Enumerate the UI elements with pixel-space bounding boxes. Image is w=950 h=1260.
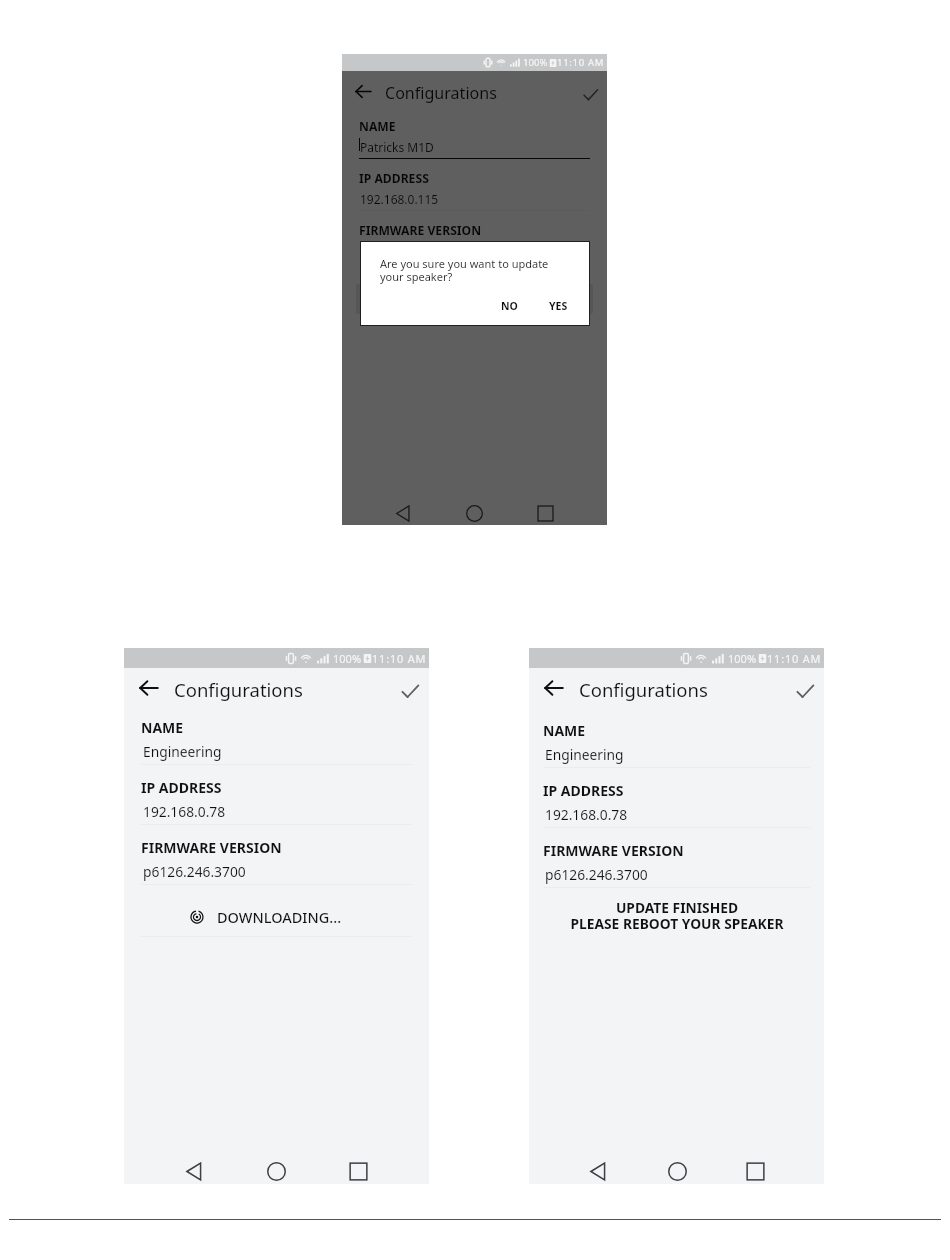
staticText: NAME	[543, 721, 586, 740]
staticText: FIRMWARE VERSION	[141, 838, 282, 857]
staticText: 11:10 AM	[767, 651, 822, 666]
staticText: Are you sure you want to update your spe…	[380, 256, 549, 284]
button[interactable]: Back	[368, 502, 439, 525]
staticText: IP ADDRESS	[359, 170, 429, 187]
staticText: Patricks M1D	[360, 139, 434, 155]
staticText: NO	[501, 299, 518, 313]
staticText: UPDATE FINISHED PLEASE REBOOT YOUR SPEAK…	[570, 898, 784, 933]
staticText: IP ADDRESS	[141, 778, 222, 797]
staticText: IP ADDRESS	[543, 781, 624, 800]
button[interactable]: Confirm	[793, 679, 817, 703]
button[interactable]: Home	[235, 1158, 317, 1184]
button[interactable]: Recents	[716, 1158, 794, 1184]
staticText: DOWNLOADING...	[217, 907, 342, 927]
staticText: Engineering	[545, 745, 624, 764]
staticText: 192.168.0.115	[360, 191, 439, 207]
staticText: p6126.246.3700	[143, 862, 246, 881]
button[interactable]: Back	[154, 1158, 235, 1184]
button[interactable]: Home	[439, 502, 510, 525]
staticText: p6126.246.3700	[545, 865, 648, 884]
staticText: 192.168.0.78	[545, 805, 628, 824]
staticText: NAME	[141, 718, 184, 737]
staticText: 192.168.0.78	[143, 802, 226, 821]
staticText: p6126.246.3700	[360, 243, 450, 259]
button[interactable]: Recents	[317, 1158, 399, 1184]
button[interactable]: Home	[638, 1158, 716, 1184]
staticText: 11:10 AM	[372, 651, 427, 666]
staticText: Configurations	[174, 677, 303, 702]
staticText: 100%	[523, 56, 548, 69]
button[interactable]: NO	[494, 295, 525, 317]
button[interactable]: UPDATE	[356, 284, 593, 314]
button[interactable]: Confirm	[398, 679, 422, 703]
staticText: Engineering	[143, 742, 222, 761]
staticText: FIRMWARE VERSION	[543, 841, 684, 860]
button[interactable]: Back	[353, 81, 374, 102]
staticText: 100%	[728, 651, 757, 666]
staticText: Configurations	[385, 82, 497, 104]
button[interactable]: Back	[559, 1158, 638, 1184]
staticText: NAME	[359, 118, 396, 135]
staticText: Configurations	[579, 677, 708, 702]
staticText: YES	[549, 299, 568, 313]
button[interactable]: YES	[542, 295, 575, 317]
staticText: 11:10 AM	[557, 56, 605, 69]
button[interactable]: Recents	[510, 502, 581, 525]
button[interactable]: Back	[542, 676, 566, 700]
staticText: 100%	[333, 651, 362, 666]
staticText: FIRMWARE VERSION	[359, 222, 482, 239]
button[interactable]: Back	[137, 676, 161, 700]
button[interactable]: Confirm	[580, 84, 601, 105]
